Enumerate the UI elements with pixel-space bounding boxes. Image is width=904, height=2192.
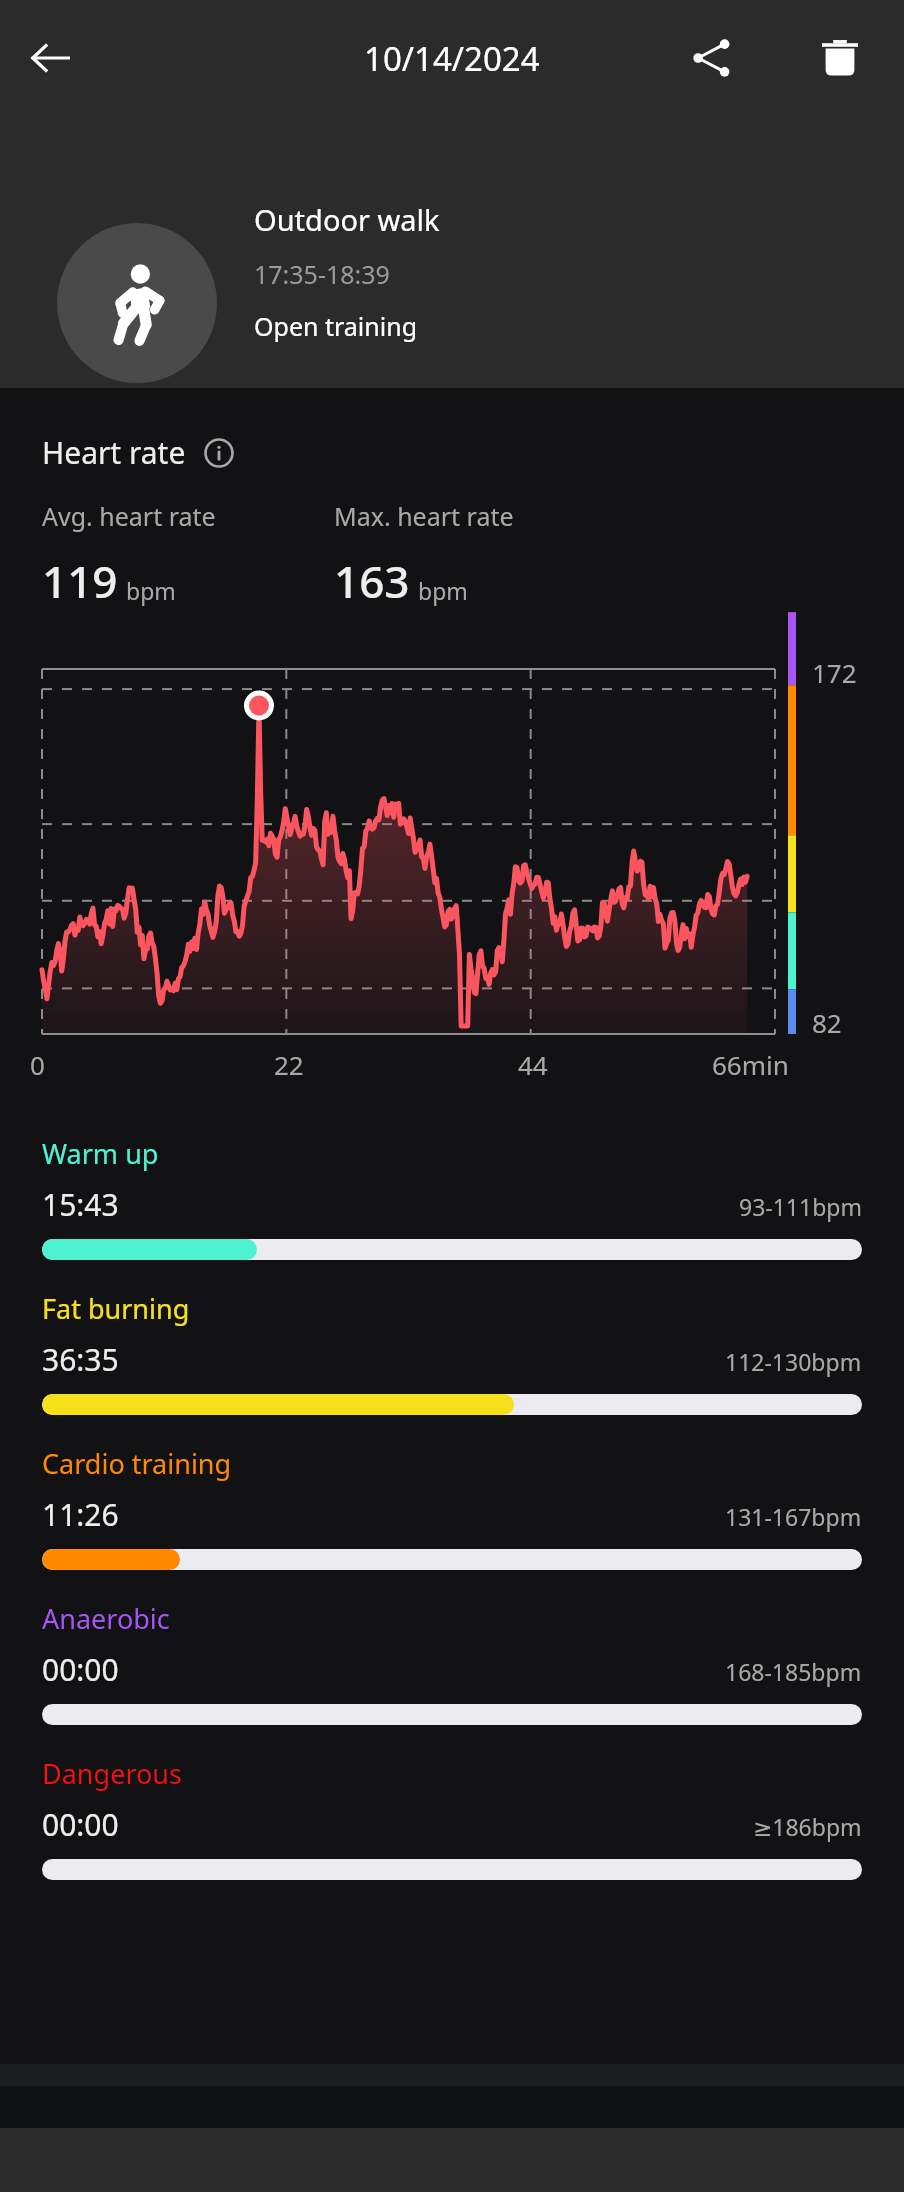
staticText: ≥186bpm — [753, 1811, 862, 1842]
staticText: Outdoor walk — [254, 200, 440, 239]
staticText: Warm up — [42, 1135, 159, 1172]
staticText: Anaerobic — [42, 1600, 170, 1637]
staticText: Heart rate — [42, 432, 186, 473]
staticText: 22 — [274, 1047, 304, 1082]
button[interactable]: Warm up — [0, 1135, 904, 1260]
button[interactable]: Fat burning — [0, 1290, 904, 1415]
staticText: bpm — [126, 575, 176, 606]
button[interactable]: Cardio training — [0, 1445, 904, 1570]
button[interactable]: Heart rate — [42, 432, 234, 473]
staticText: 172 — [812, 655, 857, 690]
button[interactable]: Anaerobic — [0, 1600, 904, 1725]
button[interactable]: Share — [676, 22, 748, 94]
staticText: 168-185bpm — [725, 1656, 862, 1687]
staticText: Open training — [254, 309, 418, 343]
staticText: Avg. heart rate — [42, 499, 216, 533]
staticText: 163 — [334, 551, 410, 611]
staticText: 44 — [518, 1047, 548, 1082]
button[interactable]: Dangerous — [0, 1755, 904, 1880]
staticText: 112-130bpm — [725, 1346, 862, 1377]
staticText: 10/14/2024 — [364, 36, 540, 81]
staticText: Max. heart rate — [334, 499, 514, 533]
staticText: bpm — [418, 575, 468, 606]
button[interactable]: Delete — [804, 22, 876, 94]
button[interactable]: Back — [14, 22, 86, 94]
staticText: 66min — [712, 1047, 789, 1082]
staticText: 00:00 — [42, 1804, 119, 1845]
staticText: Dangerous — [42, 1755, 182, 1792]
staticText: 17:35-18:39 — [254, 257, 390, 291]
staticText: 36:35 — [42, 1339, 119, 1380]
other: Info — [204, 438, 234, 468]
staticText: 0 — [30, 1047, 45, 1082]
staticText: Cardio training — [42, 1445, 232, 1482]
staticText: 131-167bpm — [725, 1501, 862, 1532]
staticText: 00:00 — [42, 1649, 119, 1690]
staticText: 11:26 — [42, 1494, 119, 1535]
staticText: 93-111bpm — [739, 1191, 862, 1222]
staticText: 82 — [812, 1005, 842, 1040]
staticText: 119 — [42, 551, 118, 611]
staticText: 15:43 — [42, 1184, 119, 1225]
staticText: Fat burning — [42, 1290, 190, 1327]
